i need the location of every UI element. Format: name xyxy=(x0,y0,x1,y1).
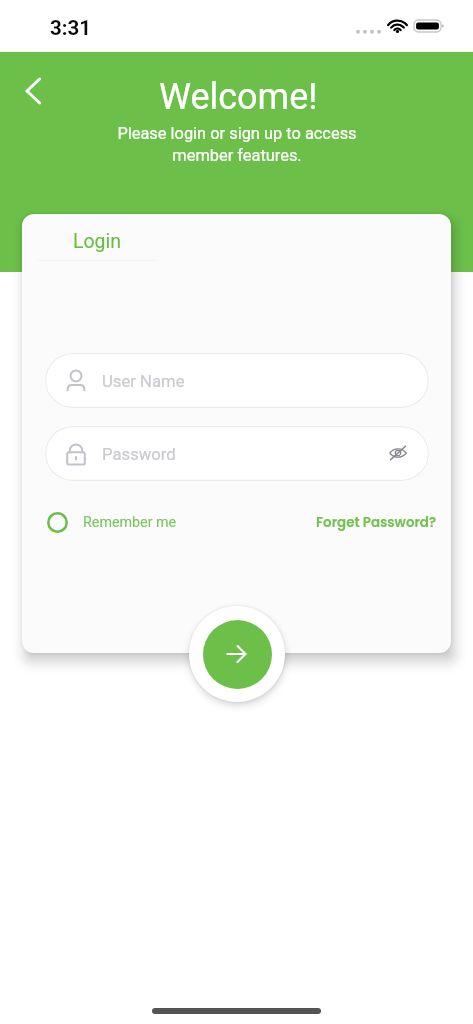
staticText: Password xyxy=(102,445,176,465)
button[interactable]: Login xyxy=(60,224,135,259)
staticText: 3:31 xyxy=(50,16,92,40)
staticText: Please login or sign up to access member… xyxy=(117,124,357,165)
staticText: Forget Password? xyxy=(316,513,437,532)
staticText: Welcome! xyxy=(159,76,318,118)
button[interactable]: Remember me xyxy=(47,508,177,536)
button[interactable]: User Name xyxy=(45,353,429,408)
button[interactable]: Password xyxy=(45,426,429,481)
button[interactable]: Back xyxy=(14,71,54,111)
button[interactable]: Forget Password? xyxy=(316,508,437,536)
staticText: Login xyxy=(73,230,122,253)
staticText: Remember me xyxy=(83,514,177,531)
staticText: User Name xyxy=(102,372,185,392)
button[interactable]: Submit xyxy=(203,620,272,689)
button[interactable]: Toggle password visibility xyxy=(383,438,413,468)
